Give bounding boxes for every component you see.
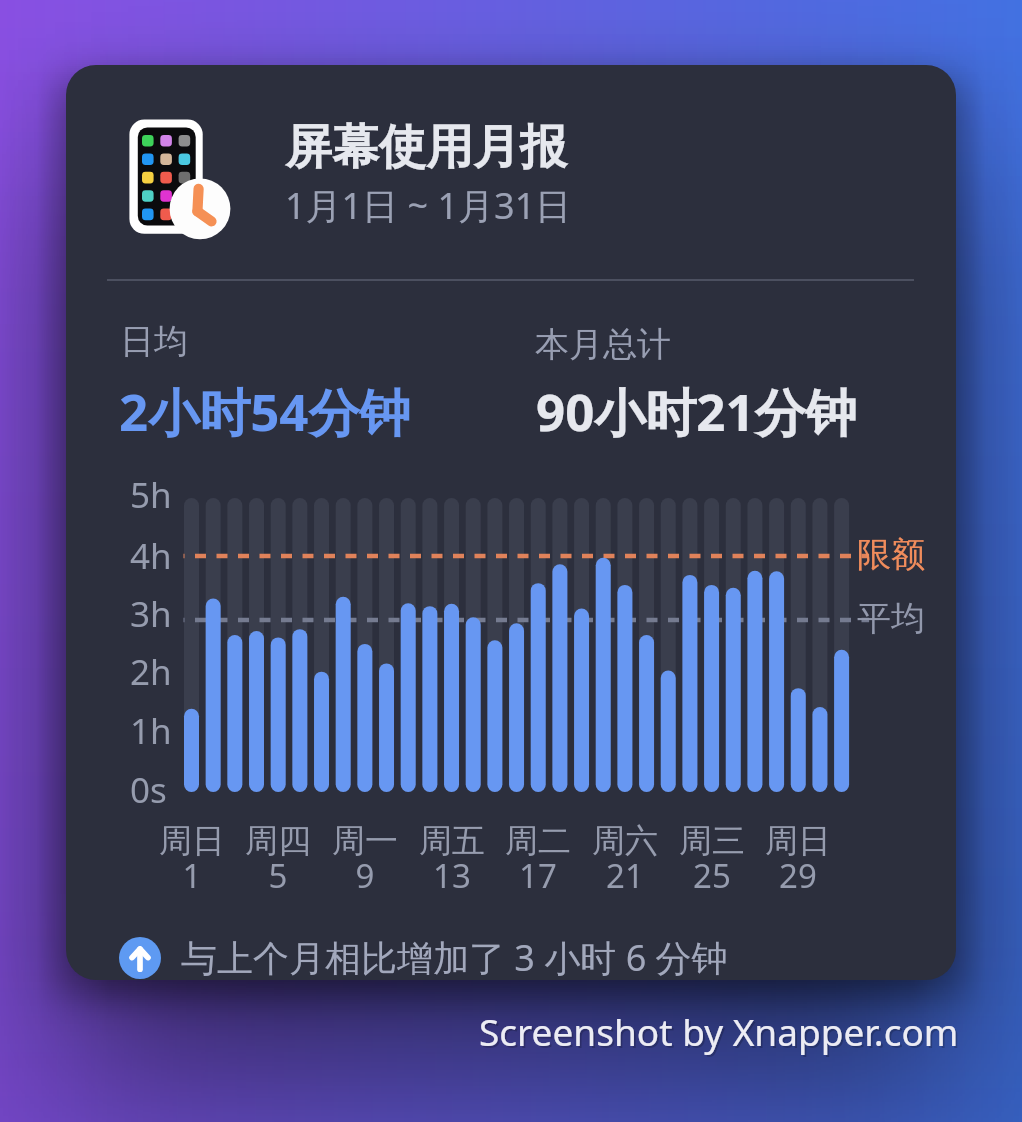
staticText: 25 — [667, 853, 757, 898]
staticText: 周六 — [580, 820, 670, 862]
staticText: 5h — [130, 471, 172, 519]
staticText: 2h — [130, 648, 172, 696]
staticText: 屏幕使用月报 — [285, 118, 567, 177]
staticText: 17 — [493, 853, 583, 898]
staticText: 0s — [130, 766, 167, 814]
staticText: 本月总计 — [535, 323, 671, 366]
staticText: 周二 — [493, 820, 583, 862]
staticText: 3h — [130, 590, 172, 638]
staticText: 与上个月相比增加了 3 小时 6 分钟 — [181, 933, 728, 980]
staticText: 限额 — [857, 533, 925, 576]
button[interactable]: Increase — [119, 933, 728, 980]
button[interactable]: 屏幕使用月报 — [66, 65, 956, 980]
staticText: 90小时21分钟 — [536, 376, 857, 446]
staticText: 1h — [130, 707, 172, 755]
staticText: 平均 — [857, 597, 925, 640]
staticText: 29 — [753, 853, 843, 898]
staticText: 周日 — [753, 820, 843, 862]
other: Increase — [119, 937, 161, 979]
staticText: 21 — [580, 853, 670, 898]
staticText: Screenshot by Xnapper.com — [481, 1008, 961, 1058]
staticText: 2小时54分钟 — [119, 376, 411, 446]
staticText: Screenshot by Xnapper.com — [479, 1006, 959, 1056]
staticText: 4h — [130, 532, 172, 580]
staticText: 周三 — [667, 820, 757, 862]
staticText: 日均 — [120, 320, 188, 363]
staticText: 13 — [407, 853, 497, 898]
staticText: 周一 — [320, 820, 410, 862]
staticText: 周四 — [233, 820, 323, 862]
staticText: 1月1日 ~ 1月31日 — [285, 181, 572, 230]
staticText: 9 — [320, 853, 410, 898]
staticText: 周日 — [147, 820, 237, 862]
staticText: 周五 — [407, 820, 497, 862]
staticText: 5 — [233, 853, 323, 898]
staticText: 1 — [147, 853, 237, 898]
